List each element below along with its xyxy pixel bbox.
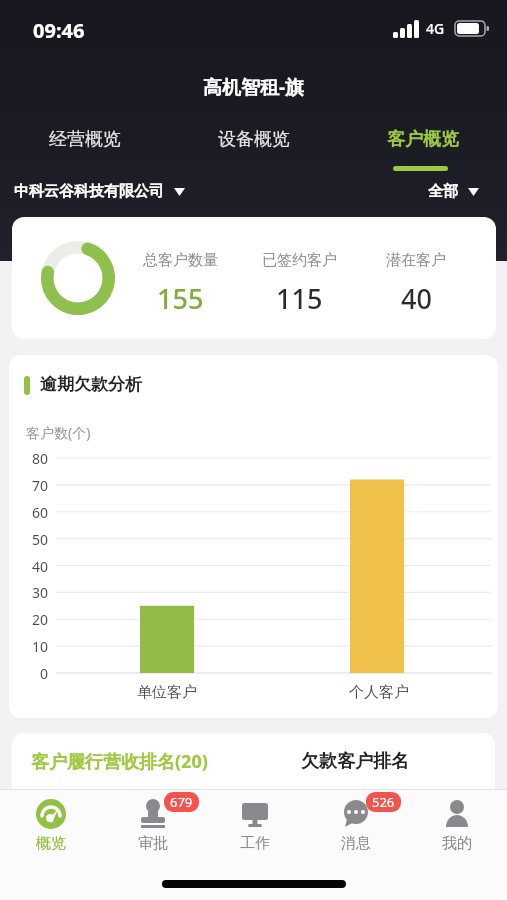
staticText: 设备概览 [218,128,290,151]
staticText: 155 [157,280,204,317]
button[interactable]: 客户概览 [338,128,507,151]
staticText: 20 [32,610,49,628]
staticText: 客户履行营收排名(20) [31,749,208,774]
staticText: 30 [32,583,49,601]
staticText: 总客户数量 [143,251,218,270]
button[interactable]: 概览 [0,789,102,851]
button[interactable]: 全部 [428,182,479,201]
staticText: 0 [40,664,49,682]
staticText: 消息 [341,834,371,851]
staticText: 概览 [36,834,66,851]
staticText: 高机智租-旗 [203,74,305,100]
staticText: 中科云谷科技有限公司 [14,182,164,201]
staticText: 全部 [428,182,458,201]
staticText: 4G [426,19,445,38]
staticText: 50 [32,530,49,548]
button[interactable]: 中科云谷科技有限公司 [14,182,185,201]
staticText: 60 [32,503,49,521]
staticText: 单位客户 [137,683,197,702]
staticText: 679 [170,793,193,811]
staticText: 09:46 [33,17,85,44]
button[interactable]: 设备概览 [169,128,338,151]
button[interactable]: 经营概览 [0,128,169,151]
staticText: 潜在客户 [386,251,446,270]
staticText: 个人客户 [349,683,409,702]
staticText: 客户数(个) [26,423,91,442]
button[interactable]: 工作 [204,789,305,851]
staticText: 工作 [240,834,270,851]
staticText: 526 [372,793,395,811]
button[interactable]: 欠款客户排名 [301,750,409,773]
staticText: 客户概览 [387,128,459,151]
button[interactable]: 我的 [406,789,507,851]
staticText: 40 [32,557,49,575]
staticText: 115 [276,280,323,317]
button[interactable]: 审批 [102,789,204,851]
button[interactable]: 消息 [305,789,406,851]
staticText: 80 [32,449,49,467]
staticText: 欠款客户排名 [301,750,409,773]
button[interactable]: 客户履行营收排名(20) [31,749,208,774]
staticText: 10 [32,637,49,655]
staticText: 我的 [442,834,472,851]
staticText: 已签约客户 [262,251,337,270]
staticText: 经营概览 [49,128,121,151]
staticText: 逾期欠款分析 [40,374,142,395]
staticText: 40 [401,280,432,317]
staticText: 审批 [138,834,168,851]
staticText: 70 [32,476,49,494]
